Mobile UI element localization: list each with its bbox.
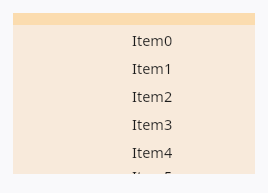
button[interactable]: Item0 [13,26,255,54]
staticText: Item4 [132,142,173,162]
button[interactable]: Item3 [13,110,255,138]
staticText: Item2 [132,86,173,106]
button[interactable]: Item2 [13,82,255,110]
staticText: Item5 [132,166,173,174]
button[interactable]: Item5 [13,166,255,174]
staticText: Item3 [132,114,173,134]
button[interactable]: Item1 [13,54,255,82]
button[interactable]: Item4 [13,138,255,166]
staticText: Item1 [132,58,173,78]
staticText: Item0 [132,30,173,50]
